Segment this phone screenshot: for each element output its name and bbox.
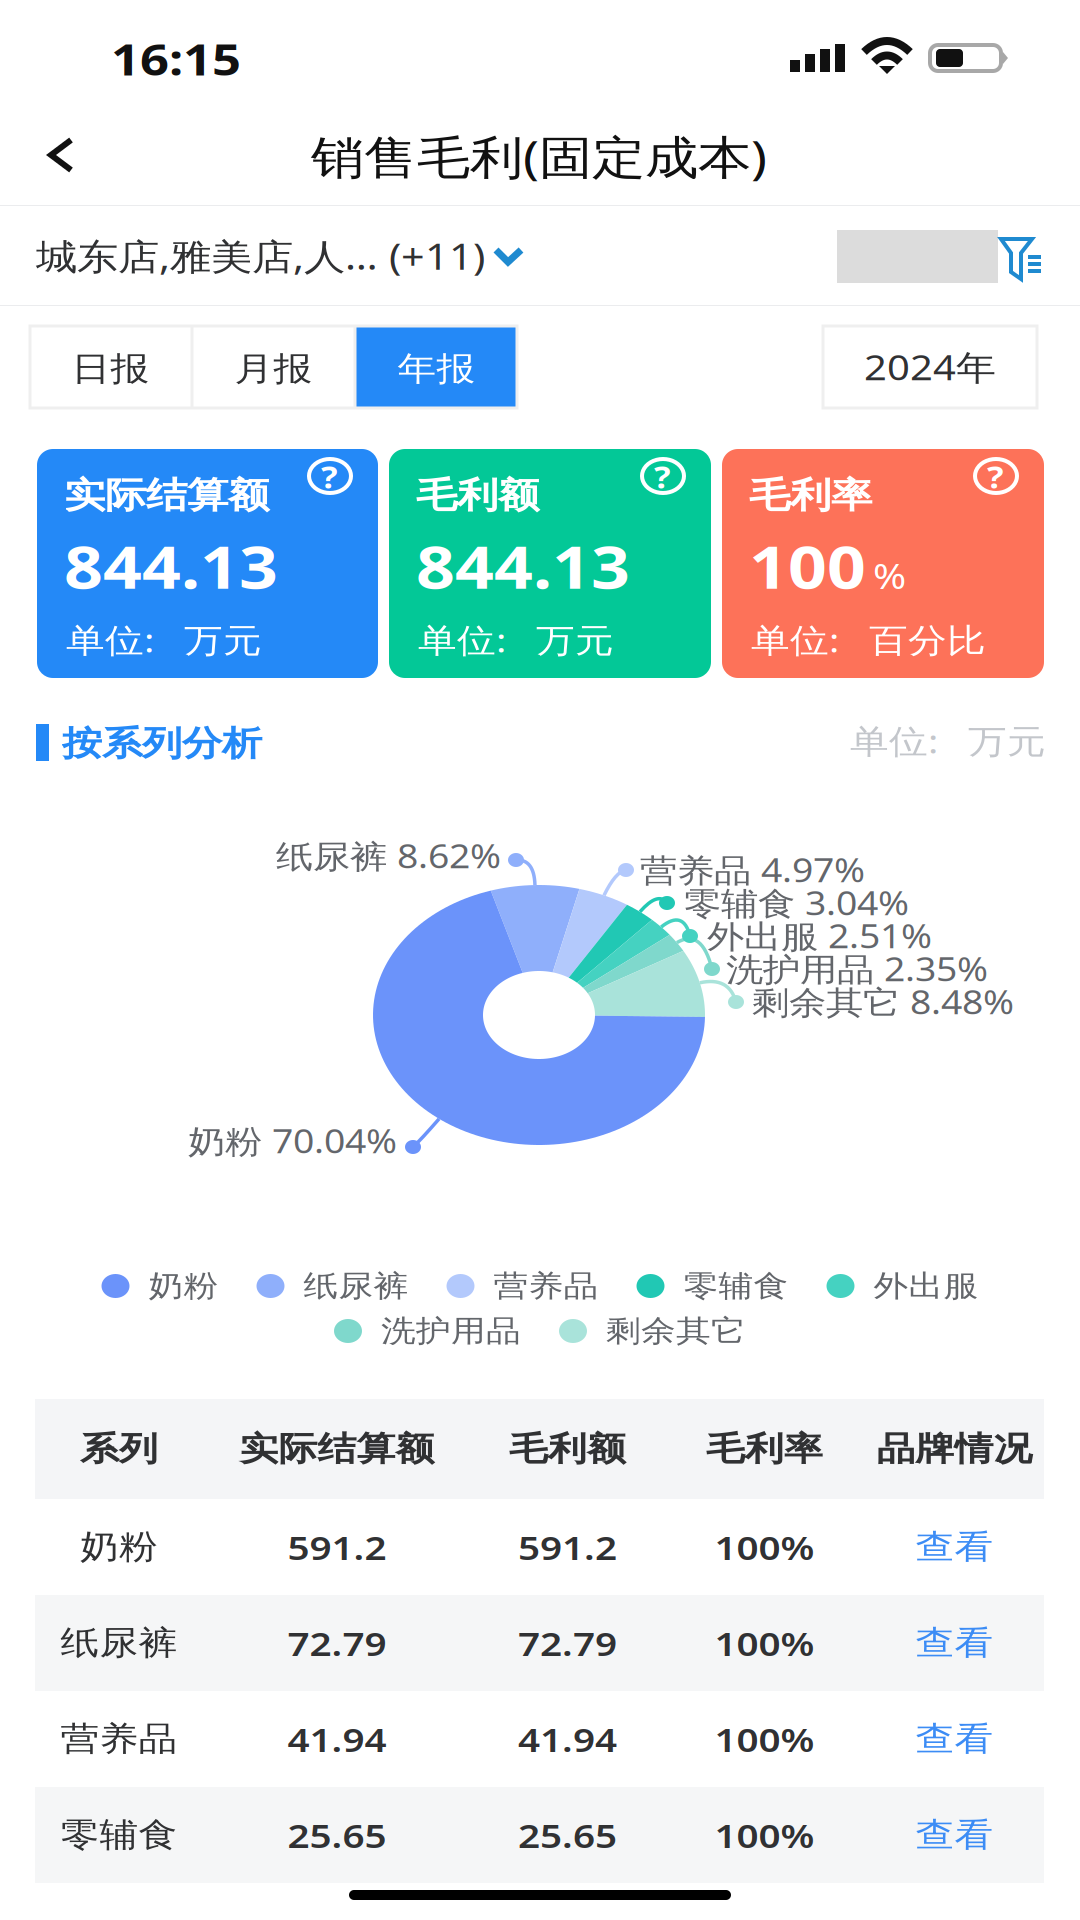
staticText: 奶粉 70.04% (188, 1116, 397, 1166)
staticText: 844.13 (64, 521, 278, 611)
staticText: 2024年 (864, 340, 996, 393)
staticText: 100% (714, 1617, 814, 1669)
staticText: 16:15 (111, 25, 241, 92)
staticText: 营养品 (60, 1715, 177, 1763)
staticText: 单位: 万元 (66, 614, 262, 665)
staticText: 591.2 (518, 1521, 617, 1573)
button[interactable]: 查看 (865, 1691, 1044, 1787)
staticText: 844.13 (416, 521, 630, 611)
staticText: 年报 (397, 345, 475, 393)
staticText: 零辅食 (683, 1265, 788, 1307)
button[interactable]: 年报 (355, 325, 518, 409)
staticText: 零辅食 3.04% (684, 878, 909, 928)
staticText: 100% (714, 1713, 814, 1765)
staticText: 25.65 (287, 1809, 386, 1861)
staticText: 洗护用品 (381, 1310, 521, 1352)
staticText: 销售毛利(固定成本) (311, 121, 767, 192)
staticText: 日报 (71, 345, 149, 393)
staticText: 零辅食 (60, 1811, 177, 1859)
staticText: 纸尿裤 (60, 1619, 177, 1667)
button[interactable]: 毛利额 (389, 449, 711, 678)
staticText: 实际结算额 (239, 1425, 434, 1473)
staticText: 591.2 (287, 1521, 386, 1573)
staticText: 100% (714, 1809, 814, 1861)
staticText: 单位: 万元 (418, 614, 614, 665)
button[interactable]: 返回 (0, 110, 110, 205)
button[interactable]: 城东店,雅美店,人… (+11) (36, 226, 521, 286)
staticText: 外出服 (873, 1265, 978, 1307)
staticText: 系列 (80, 1425, 158, 1473)
staticText: 实际结算额 (64, 470, 269, 521)
staticText: 100% (714, 1521, 814, 1573)
button[interactable]: 月报 (192, 325, 355, 409)
staticText: ? (987, 454, 1004, 500)
staticText: 纸尿裤 8.62% (276, 831, 501, 881)
staticText: 72.79 (287, 1617, 386, 1669)
staticText: 洗护用品 2.35% (726, 944, 988, 994)
staticText: 查看 (915, 1811, 993, 1859)
staticText: 毛利额 (416, 470, 539, 521)
staticText: % (873, 549, 906, 602)
staticText: 剩余其它 8.48% (752, 977, 1014, 1027)
staticText: 41.94 (287, 1713, 386, 1765)
staticText: 纸尿裤 (303, 1265, 408, 1307)
button[interactable]: 实际结算额 (37, 449, 378, 678)
staticText: 毛利率 (706, 1425, 823, 1473)
staticText: 毛利额 (509, 1425, 626, 1473)
staticText: 100 (749, 521, 866, 611)
button[interactable]: 筛选 (1000, 238, 1042, 283)
staticText: 品牌情况 (876, 1425, 1032, 1473)
staticText: 奶粉 (80, 1523, 158, 1571)
staticText: ? (321, 454, 338, 500)
staticText: 奶粉 (148, 1265, 218, 1307)
staticText: 41.94 (518, 1713, 617, 1765)
staticText: 毛利率 (749, 470, 872, 521)
staticText: 城东店,雅美店,人… (+11) (36, 229, 485, 283)
button[interactable]: 查看 (865, 1595, 1044, 1691)
staticText: 营养品 4.97% (640, 845, 865, 895)
staticText: ? (654, 454, 671, 500)
staticText: 营养品 (493, 1265, 598, 1307)
staticText: 查看 (915, 1523, 993, 1571)
button[interactable]: 查看 (865, 1499, 1044, 1595)
button[interactable]: 2024年 (822, 325, 1038, 409)
staticText: 剩余其它 (606, 1310, 746, 1352)
staticText: 72.79 (518, 1617, 617, 1669)
button[interactable]: 日报 (29, 325, 192, 409)
staticText: 外出服 2.51% (707, 911, 932, 961)
staticText: 25.65 (518, 1809, 617, 1861)
staticText: 月报 (234, 345, 312, 393)
staticText: 按系列分析 (62, 719, 262, 768)
button[interactable]: 毛利率 (722, 449, 1044, 678)
staticText: 查看 (915, 1619, 993, 1667)
staticText: 单位: 万元 (850, 715, 1046, 766)
button[interactable]: 查看 (865, 1787, 1044, 1883)
staticText: 查看 (915, 1715, 993, 1763)
staticText: 单位: 百分比 (751, 614, 986, 665)
